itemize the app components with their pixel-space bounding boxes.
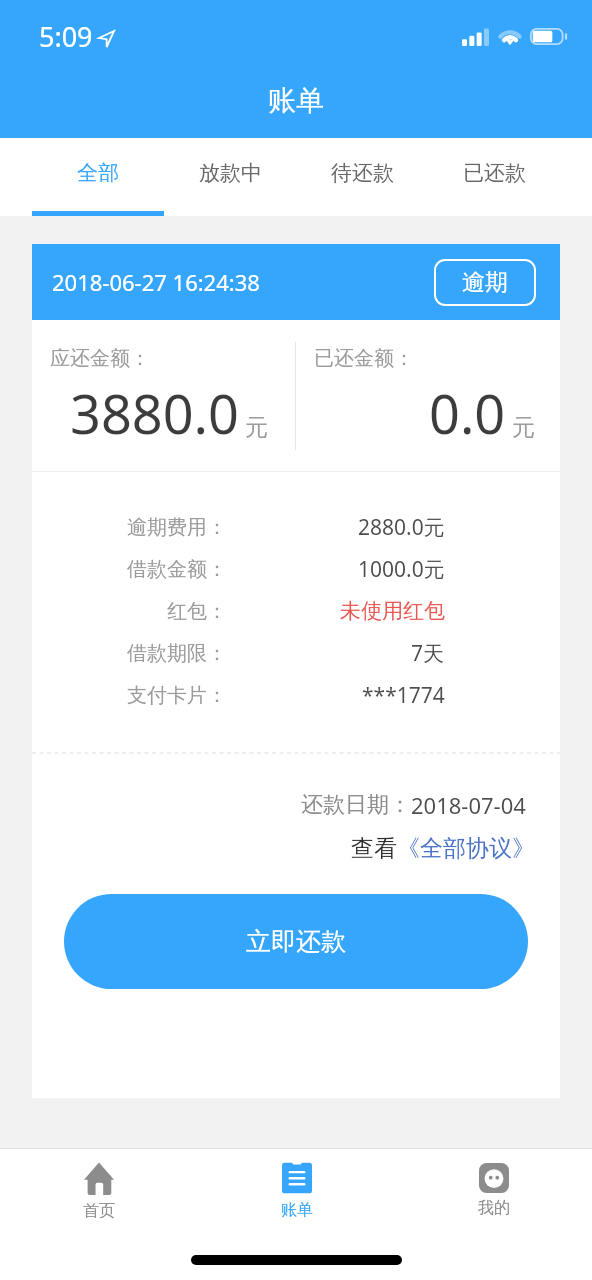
staticText: 2018-07-04: [411, 790, 526, 820]
staticText: 红包：: [167, 599, 227, 624]
button[interactable]: 已还款: [428, 138, 560, 216]
staticText: 0.0: [429, 376, 506, 450]
staticText: 7天: [411, 639, 445, 668]
button[interactable]: 立即还款: [64, 894, 528, 989]
staticText: 借款期限：: [127, 641, 227, 666]
staticText: 逾期: [462, 268, 508, 297]
staticText: 2880.0元: [358, 513, 445, 542]
staticText: 《全部协议》: [397, 834, 535, 863]
button[interactable]: 全部: [32, 138, 164, 216]
staticText: 首页: [83, 1201, 115, 1221]
staticText: 放款中: [199, 160, 262, 186]
staticText: 2018-06-27 16:24:38: [52, 267, 260, 297]
staticText: 支付卡片：: [127, 683, 227, 708]
other: 账单: [282, 1162, 312, 1194]
staticText: 1000.0元: [358, 555, 445, 584]
button[interactable]: 查看: [351, 834, 535, 863]
other: 我的: [479, 1163, 509, 1193]
button[interactable]: 账单: [198, 1149, 395, 1240]
button[interactable]: 放款中: [164, 138, 296, 216]
button[interactable]: 待还款: [296, 138, 428, 216]
other: 首页: [84, 1162, 114, 1195]
button[interactable]: 逾期: [434, 259, 536, 306]
staticText: 账单: [268, 83, 324, 118]
staticText: 3880.0: [70, 376, 239, 450]
staticText: 借款金额：: [127, 557, 227, 582]
staticText: ***1774: [362, 681, 445, 710]
staticText: 账单: [281, 1200, 313, 1220]
staticText: 查看: [351, 834, 397, 863]
staticText: 逾期费用：: [127, 515, 227, 540]
staticText: 元: [245, 413, 268, 442]
staticText: 元: [512, 413, 535, 442]
staticText: 待还款: [331, 160, 394, 186]
staticText: 未使用红包: [340, 598, 445, 624]
button[interactable]: 我的: [395, 1149, 592, 1240]
staticText: 立即还款: [246, 926, 346, 957]
staticText: 5:09: [39, 18, 93, 55]
staticText: 应还金额：: [50, 346, 150, 371]
staticText: 我的: [478, 1198, 510, 1218]
button[interactable]: 首页: [0, 1149, 198, 1240]
staticText: 已还金额：: [314, 346, 414, 371]
staticText: 还款日期：: [301, 791, 411, 819]
staticText: 全部: [77, 160, 119, 186]
staticText: 已还款: [463, 160, 526, 186]
